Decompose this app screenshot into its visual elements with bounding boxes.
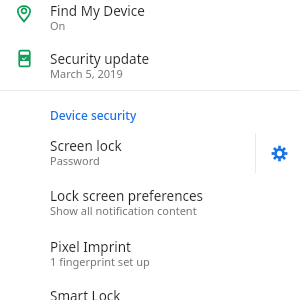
staticText: Lock screen preferences: [50, 187, 204, 205]
staticText: Device security: [50, 107, 137, 123]
staticText: Password: [50, 153, 100, 168]
button[interactable]: Smart Lock: [0, 283, 300, 300]
button[interactable]: Screen lock: [0, 131, 250, 175]
staticText: Security update: [50, 50, 150, 68]
staticText: Pixel Imprint: [50, 238, 131, 256]
button[interactable]: Pixel Imprint: [0, 233, 300, 277]
staticText: March 5, 2019: [50, 66, 123, 81]
staticText: Show all notification content: [50, 203, 197, 218]
staticText: 1 fingerprint set up: [50, 254, 150, 269]
staticText: On: [50, 18, 66, 33]
button[interactable]: Find My Device: [0, 0, 300, 44]
staticText: Find My Device: [50, 2, 145, 20]
button[interactable]: Screen lock settings: [264, 138, 294, 168]
staticText: Screen lock: [50, 137, 122, 155]
staticText: Smart Lock: [50, 287, 121, 300]
button[interactable]: Security update: [0, 46, 300, 90]
button[interactable]: Lock screen preferences: [0, 182, 300, 226]
